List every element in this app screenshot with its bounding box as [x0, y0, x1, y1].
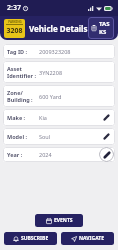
staticText: Year : [7, 151, 39, 158]
staticText: SUBSCRIBE [21, 235, 49, 242]
staticText: PARKING [8, 20, 22, 24]
button[interactable]: TASKS [88, 17, 114, 39]
staticText: Zone/Building : [7, 89, 39, 103]
staticText: 3YN2208 [39, 69, 111, 76]
staticText: 2009323208 [39, 48, 111, 55]
staticText: Tag ID : [7, 48, 39, 55]
staticText: TASKS [99, 20, 111, 36]
button[interactable]: Asset Identifier : [3, 61, 115, 83]
staticText: Soul [39, 133, 102, 140]
staticText: Kia [39, 114, 102, 121]
button[interactable]: SUBSCRIBE [4, 232, 57, 245]
button[interactable]: NAVIGATE [61, 232, 114, 245]
button[interactable]: Model : [3, 128, 115, 145]
button[interactable]: Make : [3, 109, 115, 126]
button[interactable]: Zone/Building : [3, 85, 115, 107]
button[interactable]: PARKING [4, 19, 25, 38]
staticText: EVENTS [54, 217, 73, 224]
button[interactable]: Edit Year [99, 147, 114, 162]
staticText: NAVIGATE [79, 235, 104, 242]
button[interactable]: Tag ID : [3, 44, 115, 59]
staticText: 2024 [39, 151, 102, 158]
staticText: Model : [7, 133, 39, 140]
button[interactable]: Year : [3, 147, 115, 162]
button[interactable]: EVENTS [35, 214, 83, 227]
staticText: Asset Identifier : [7, 65, 39, 79]
staticText: 3208 [6, 26, 23, 36]
button[interactable]: Edit Model : [102, 132, 111, 141]
button[interactable]: Edit Make : [102, 113, 111, 122]
staticText: 600 Yard [39, 93, 111, 100]
staticText: 2:37 [7, 3, 21, 13]
staticText: Vehicle Details [29, 23, 88, 34]
staticText: Make : [7, 114, 39, 121]
